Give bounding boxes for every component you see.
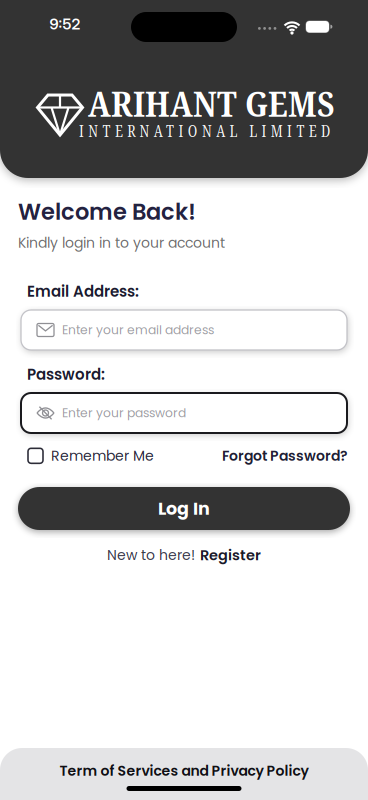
staticText: Password: (27, 364, 105, 385)
button[interactable]: Forgot Password? (222, 446, 348, 466)
staticText: ARIHANT GEMS (88, 79, 334, 127)
staticText: Register (200, 545, 261, 565)
button[interactable]: Term of Services and Privacy Policy (0, 748, 368, 800)
staticText: Remember Me (51, 446, 154, 466)
staticText: Term of Services and Privacy Policy (59, 761, 308, 781)
staticText: Forgot Password? (222, 446, 348, 466)
staticText: Log In (158, 496, 210, 521)
staticText: New to here! (107, 545, 195, 565)
staticText: Email Address: (27, 281, 139, 302)
staticText: Welcome Back! (18, 196, 196, 227)
staticText: Kindly login in to your account (18, 233, 225, 253)
staticText: Enter your email address (62, 321, 214, 339)
button[interactable]: Log In (18, 487, 350, 530)
button[interactable]: Register (200, 545, 261, 565)
staticText: Enter your password (62, 404, 186, 422)
staticText: INTERNATIONAL LIMITED (79, 120, 330, 141)
button[interactable]: Show password (36, 405, 55, 420)
staticText: 9:52 (49, 15, 80, 33)
button[interactable]: Remember Me (28, 446, 154, 466)
